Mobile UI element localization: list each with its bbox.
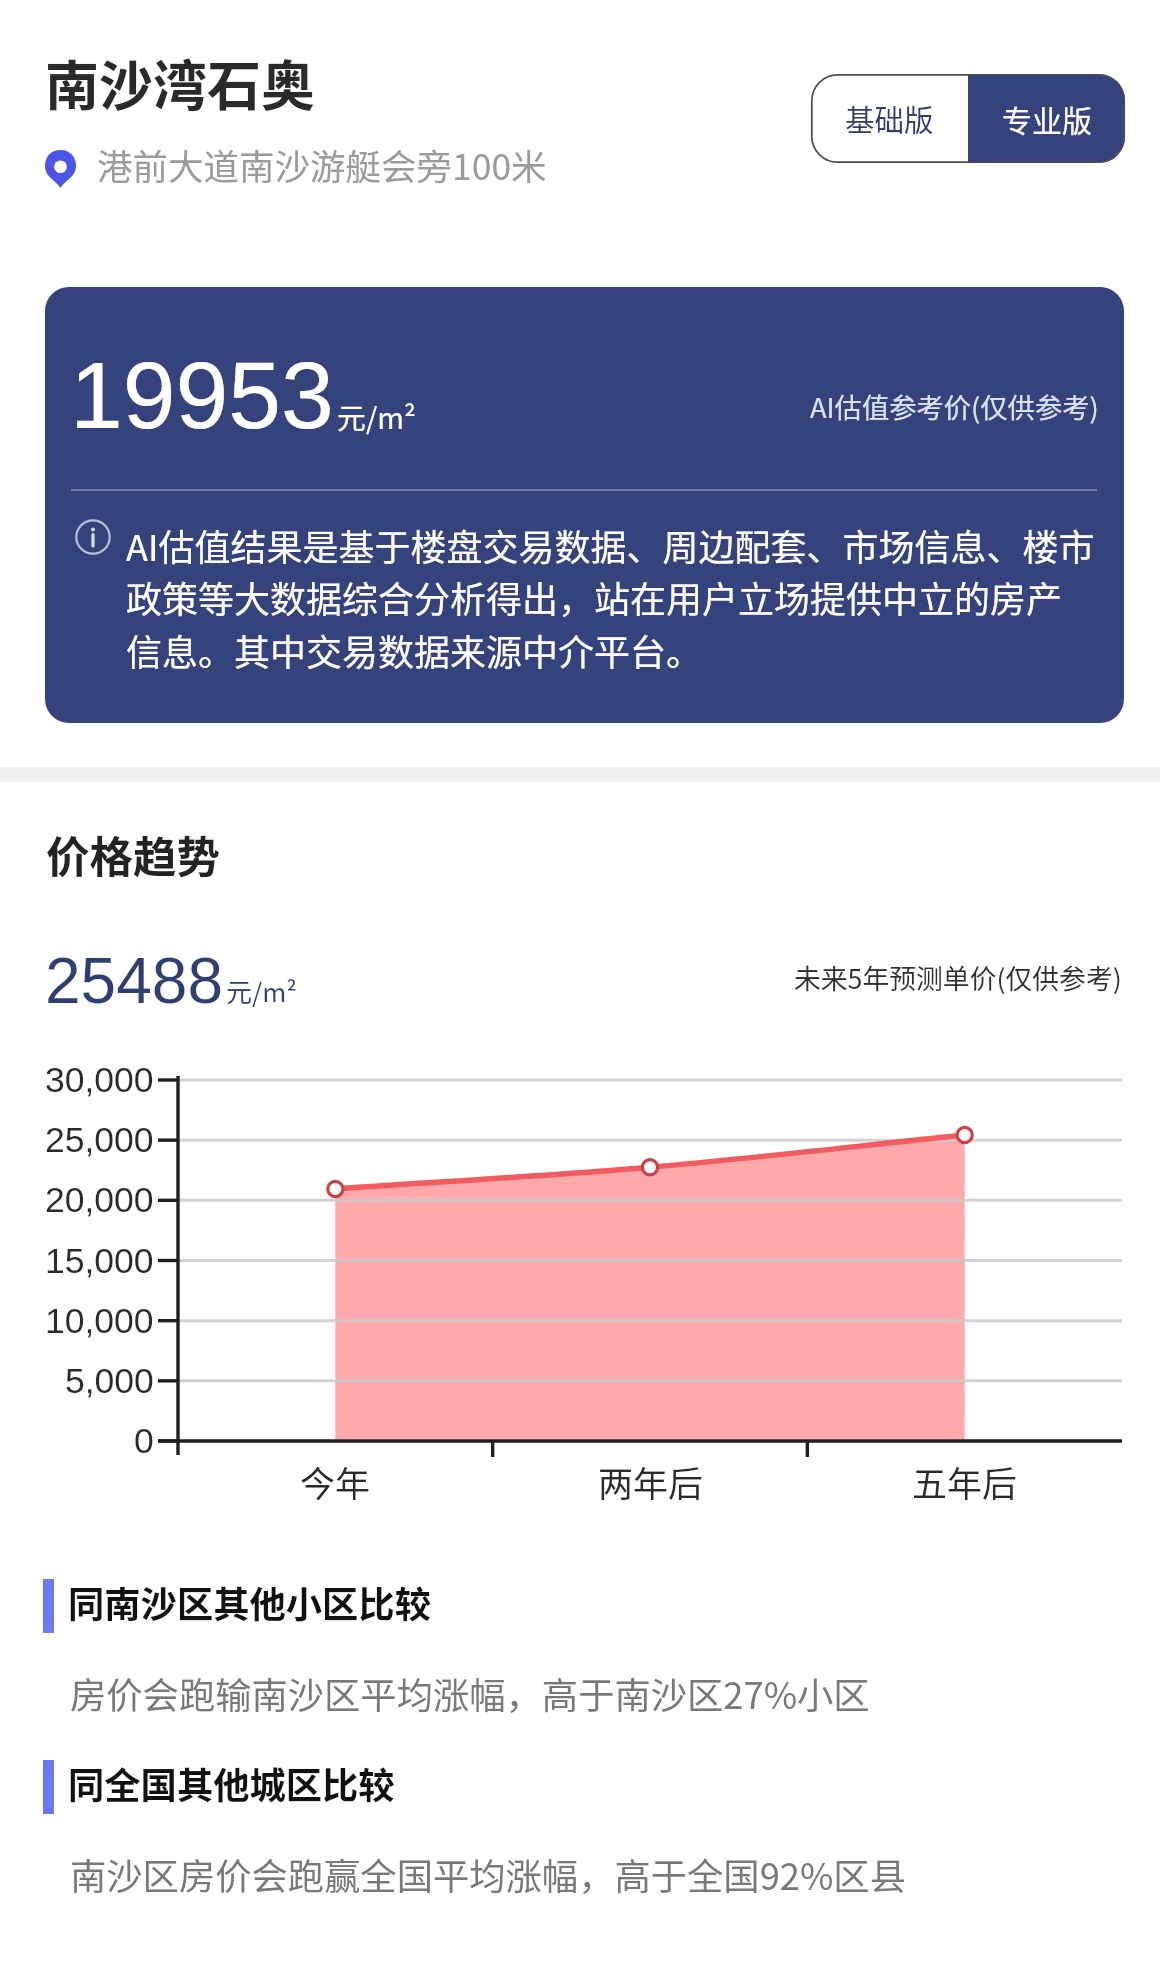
staticText: AI估值参考价(仅供参考) [810, 386, 1099, 426]
staticText: 价格趋势 [46, 823, 220, 886]
staticText: 同南沙区其他小区比较 [68, 1576, 431, 1629]
staticText: 专业版 [1002, 97, 1092, 140]
button[interactable]: 同全国其他城区比较 [43, 1750, 1103, 1910]
staticText: 0 [134, 1421, 154, 1461]
staticText: 20,000 [45, 1180, 154, 1220]
staticText: 元/m² [226, 972, 297, 1010]
staticText: 基础版 [845, 97, 934, 140]
staticText: 今年 [300, 1456, 371, 1507]
button[interactable]: 同南沙区其他小区比较 [43, 1569, 1103, 1729]
staticText: 南沙区房价会跑赢全国平均涨幅，高于全国92%区县 [70, 1848, 906, 1901]
staticText: 25488 [45, 945, 223, 1017]
staticText: 元/m² [337, 395, 416, 437]
button[interactable]: 基础版 [811, 74, 968, 163]
button[interactable]: 专业版 [968, 74, 1125, 163]
staticText: 25,000 [45, 1120, 154, 1160]
staticText: 19953 [70, 342, 334, 448]
staticText: 五年后 [912, 1456, 1018, 1507]
staticText: 5,000 [65, 1361, 154, 1401]
button[interactable]: 19953 [45, 287, 1124, 723]
staticText: 南沙湾石奥 [45, 43, 315, 121]
staticText: AI估值结果是基于楼盘交易数据、周边配套、市场信息、楼市 政策等大数据综合分析得… [126, 519, 1095, 676]
staticText: 未来5年预测单价(仅供参考) [794, 958, 1122, 997]
staticText: 15,000 [45, 1241, 154, 1281]
other: Location [45, 150, 76, 188]
staticText: 港前大道南沙游艇会旁100米 [97, 139, 547, 190]
staticText: 10,000 [45, 1301, 154, 1341]
staticText: 两年后 [598, 1456, 704, 1507]
staticText: 30,000 [45, 1060, 154, 1100]
staticText: 房价会跑输南沙区平均涨幅，高于南沙区27%小区 [70, 1667, 870, 1720]
staticText: 同全国其他城区比较 [68, 1757, 395, 1810]
